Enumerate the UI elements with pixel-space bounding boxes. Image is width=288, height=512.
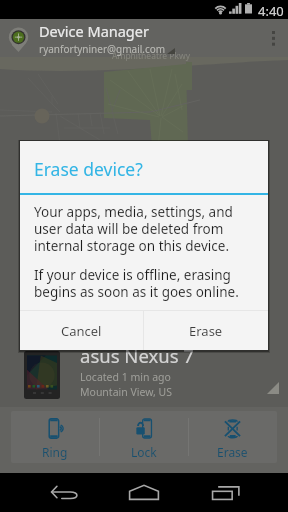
staticText: Lock xyxy=(131,444,157,460)
staticText: Device Manager xyxy=(39,21,149,41)
staticText: Erase xyxy=(217,444,248,460)
button[interactable]: Erase xyxy=(144,311,268,350)
button[interactable]: Home xyxy=(111,473,177,512)
staticText: Ring xyxy=(42,444,68,460)
staticText: Mountain View, US xyxy=(80,385,173,399)
staticText: Amphitheatre Pkwy xyxy=(112,50,191,62)
button[interactable]: Lock xyxy=(99,411,188,463)
staticText: 4:40 xyxy=(258,2,284,20)
button[interactable]: Back xyxy=(31,473,97,512)
button[interactable]: asus Nexus 7 xyxy=(0,340,288,406)
staticText: If your device is offline, erasing begin… xyxy=(34,266,254,301)
staticText: Cancel xyxy=(61,322,102,340)
staticText: Located 1 min ago xyxy=(80,370,171,384)
button[interactable]: Ring xyxy=(11,411,99,463)
button[interactable]: Recent apps xyxy=(193,473,259,512)
staticText: ryanfortyniner@gmail.com xyxy=(39,42,166,56)
staticText: Your apps, media, settings, and user dat… xyxy=(34,203,254,255)
button[interactable]: Erase xyxy=(188,411,277,463)
button[interactable]: More options xyxy=(258,19,288,57)
staticText: Erase xyxy=(189,322,223,340)
staticText: Erase device? xyxy=(34,157,143,181)
staticText: asus Nexus 7 xyxy=(80,343,194,368)
button[interactable]: Cancel xyxy=(20,311,143,350)
